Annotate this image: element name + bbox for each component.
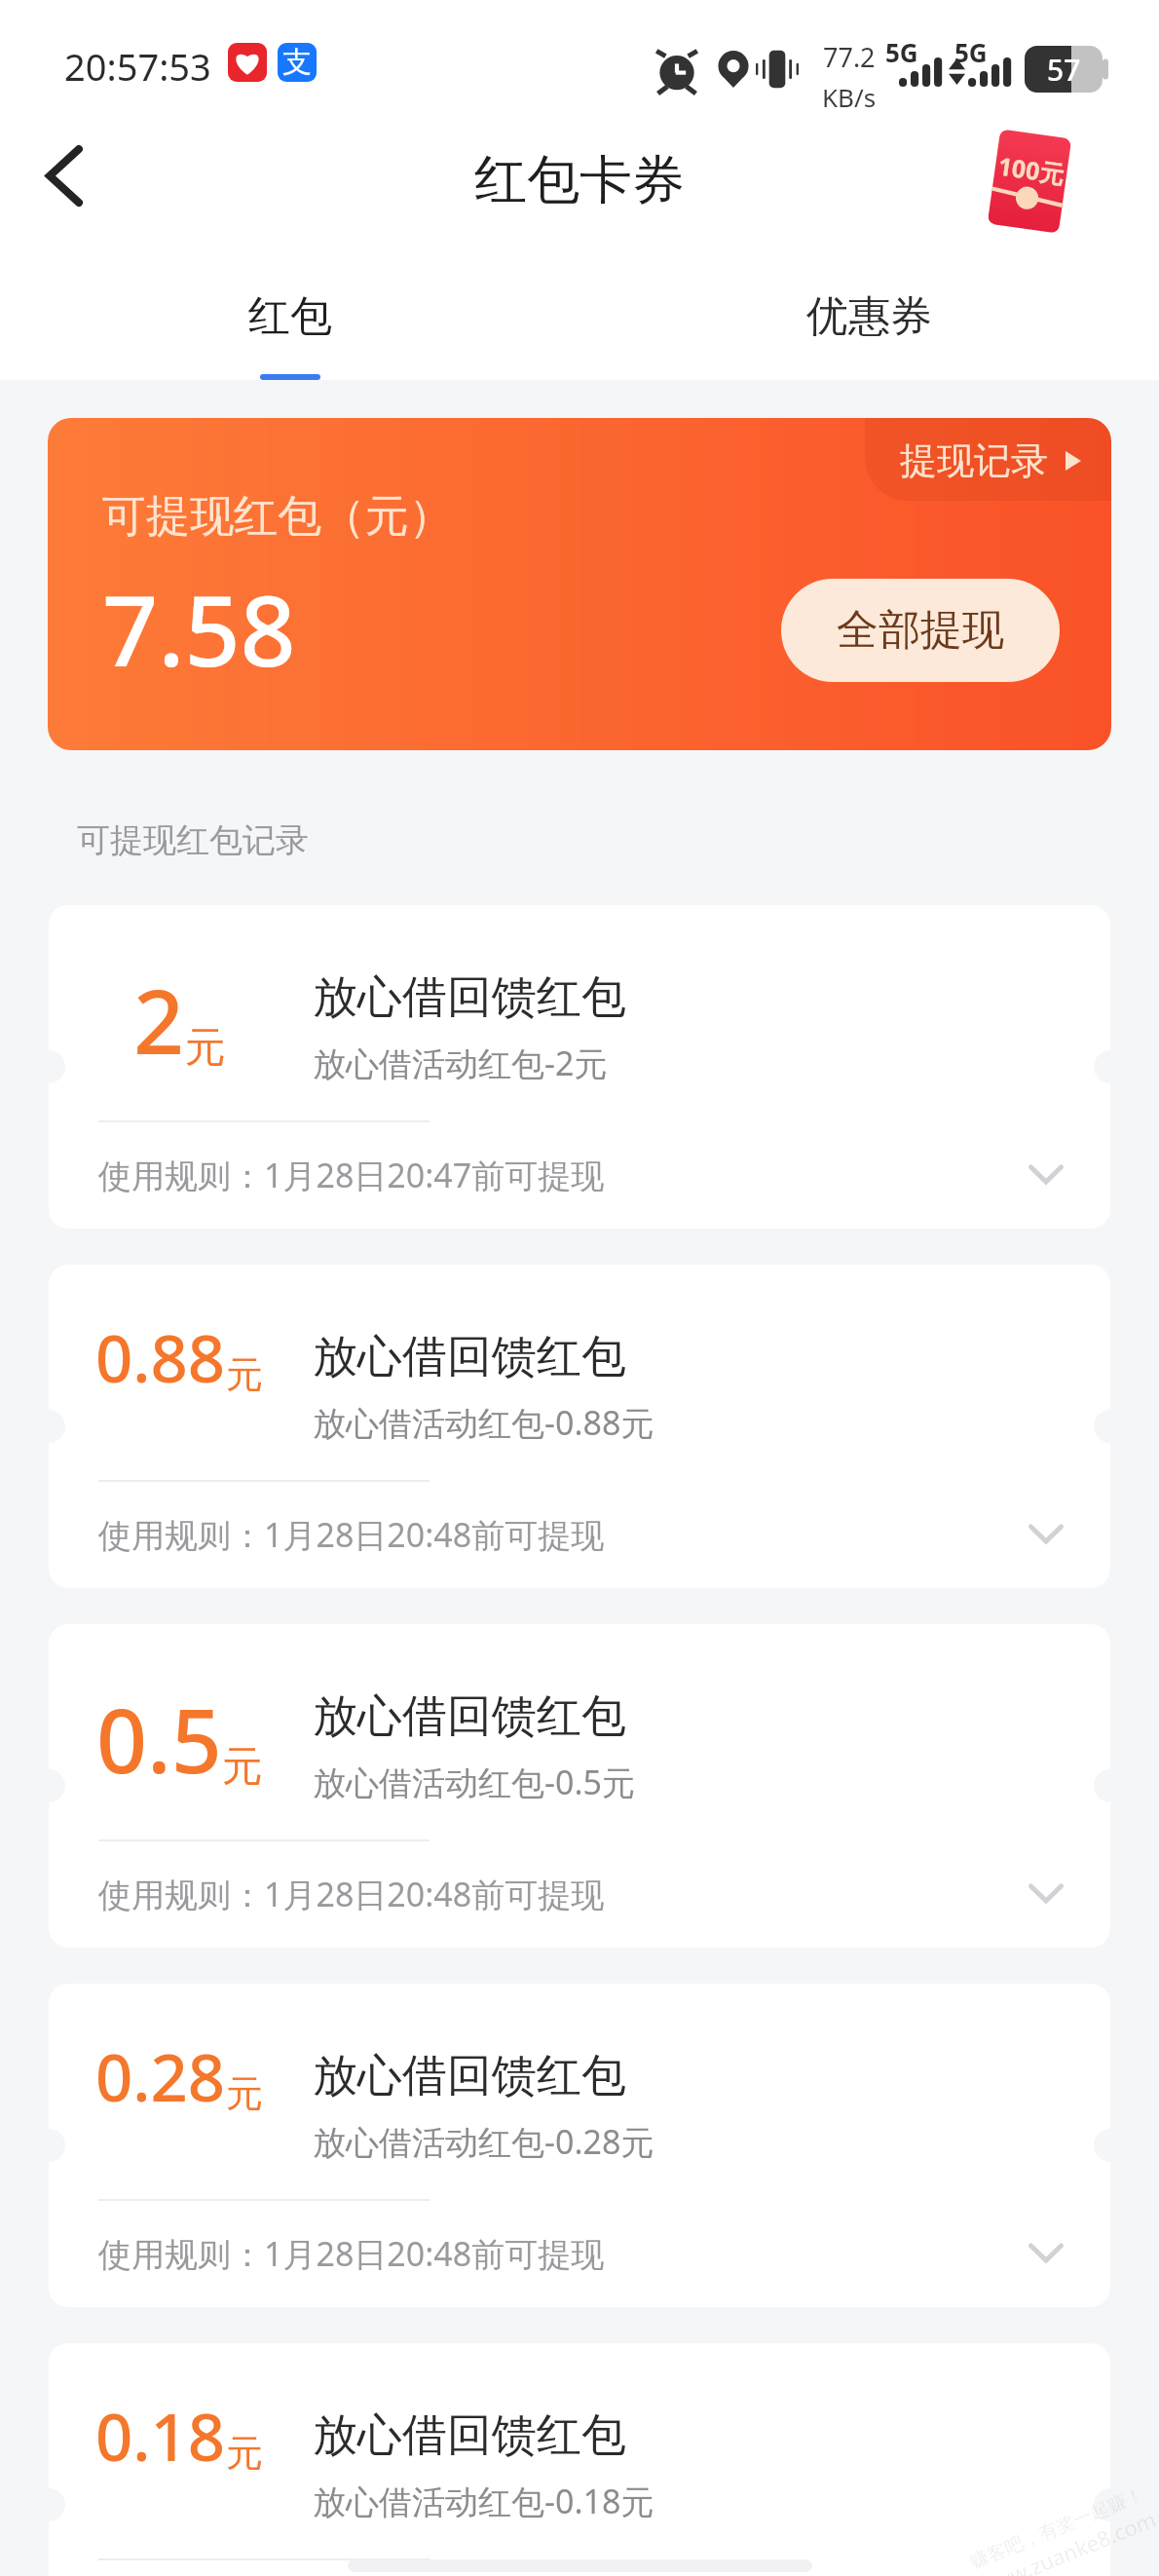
staticText: 7.58 xyxy=(102,562,296,695)
staticText: 放心借活动红包-0.28元 xyxy=(313,2119,654,2164)
staticText: 放心借回馈红包 xyxy=(313,1688,626,1745)
staticText: 元 xyxy=(226,2430,263,2477)
staticText: 100元 xyxy=(996,149,1066,191)
button[interactable]: 全部提现 xyxy=(781,579,1060,682)
staticText: 2 xyxy=(133,960,185,1080)
button[interactable]: 0.88 xyxy=(49,1265,1110,1588)
staticText: 0.28 xyxy=(95,2031,226,2120)
staticText: 0.88 xyxy=(95,1312,226,1401)
staticText: 5G xyxy=(954,35,988,69)
staticText: 0.5 xyxy=(96,1679,222,1799)
button[interactable]: 0.18 xyxy=(49,2343,1110,2576)
staticText: 元 xyxy=(226,1351,263,1398)
staticText: 放心借回馈红包 xyxy=(313,2407,626,2464)
staticText: 放心借活动红包-2元 xyxy=(313,1041,608,1085)
staticText: 放心借活动红包-0.18元 xyxy=(313,2479,654,2523)
staticText: 放心借活动红包-0.88元 xyxy=(313,1400,654,1445)
staticText: 元 xyxy=(185,1022,226,1074)
button[interactable]: 2 xyxy=(49,905,1110,1229)
staticText: 可提现红包（元） xyxy=(102,489,453,545)
staticText: 77.2 xyxy=(823,39,876,75)
staticText: 元 xyxy=(222,1741,263,1793)
staticText: 元 xyxy=(226,2070,263,2117)
button[interactable]: 提现记录 xyxy=(865,418,1111,501)
staticText: 赚客吧，有奖一起赚！ xyxy=(967,2483,1147,2574)
button[interactable]: 0.28 xyxy=(49,1984,1110,2307)
button[interactable]: 红包 xyxy=(0,251,579,380)
staticText: 支 xyxy=(282,44,312,81)
staticText: 优惠券 xyxy=(806,290,932,343)
staticText: 使用规则：1月28日20:48前可提现 xyxy=(98,2231,605,2276)
staticText: 红包卡券 xyxy=(474,147,685,213)
staticText: 放心借回馈红包 xyxy=(313,2048,626,2104)
staticText: www.zuanke8.com xyxy=(974,2504,1159,2576)
staticText: 使用规则：1月28日20:48前可提现 xyxy=(98,1872,605,1916)
staticText: 放心借活动红包-0.5元 xyxy=(313,1760,635,1804)
staticText: 可提现红包记录 xyxy=(77,819,309,861)
button[interactable]: Red packet xyxy=(991,132,1068,231)
staticText: 放心借回馈红包 xyxy=(313,969,626,1026)
staticText: 57 xyxy=(1047,50,1081,90)
staticText: 放心借回馈红包 xyxy=(313,1329,626,1385)
button[interactable]: 0.5 xyxy=(49,1624,1110,1948)
staticText: 使用规则：1月28日20:48前可提现 xyxy=(98,1512,605,1557)
staticText: KB/s xyxy=(822,80,877,114)
staticText: 提现记录 xyxy=(900,437,1048,484)
button[interactable]: Back xyxy=(14,125,115,226)
staticText: 全部提现 xyxy=(837,604,1004,657)
button[interactable]: 优惠券 xyxy=(579,251,1159,380)
staticText: 使用规则：1月28日20:47前可提现 xyxy=(98,1153,605,1197)
staticText: 红包 xyxy=(248,290,332,343)
staticText: 5G xyxy=(885,35,918,69)
staticText: 20:57:53 xyxy=(64,41,211,92)
staticText: 0.18 xyxy=(95,2391,226,2480)
